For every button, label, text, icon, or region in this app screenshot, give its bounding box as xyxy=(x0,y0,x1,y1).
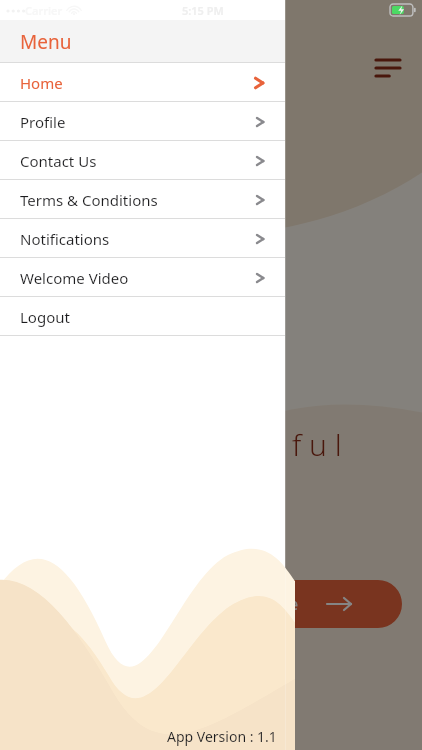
button[interactable]: Profile xyxy=(0,102,285,141)
staticText: Logout xyxy=(20,307,70,327)
staticText: Menu xyxy=(20,29,72,55)
button[interactable]: Menu xyxy=(376,58,400,78)
staticText: Home xyxy=(20,73,63,93)
button[interactable]: Choose xyxy=(222,580,402,628)
button[interactable]: Contact Us xyxy=(0,141,285,180)
staticText: Contact Us xyxy=(20,151,97,171)
button[interactable]: Notifications xyxy=(0,219,285,258)
button[interactable]: Logout xyxy=(0,297,285,336)
staticText: App Version : 1.1 xyxy=(167,727,277,746)
button[interactable]: Home xyxy=(0,63,285,102)
staticText: Terms & Conditions xyxy=(20,190,158,210)
button[interactable]: Terms & Conditions xyxy=(0,180,285,219)
staticText: Choose xyxy=(242,593,299,615)
staticText: 5:15 PM xyxy=(182,3,224,18)
staticText: Notifications xyxy=(20,229,110,249)
staticText: Profile xyxy=(20,112,66,132)
staticText: Welcome Video xyxy=(20,268,129,288)
button[interactable]: Welcome Video xyxy=(0,258,285,297)
staticText: f u l xyxy=(292,424,342,465)
